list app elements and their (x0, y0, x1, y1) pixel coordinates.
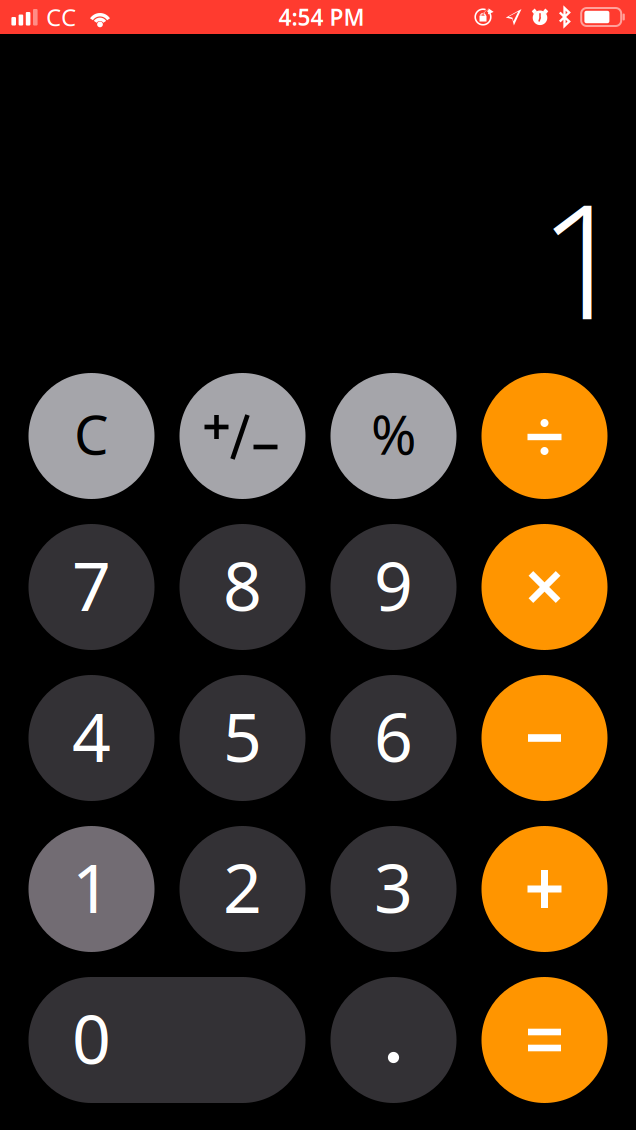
button[interactable]: 2 (179, 826, 305, 952)
button[interactable]: Plus (481, 826, 607, 952)
staticText: 0 (72, 992, 111, 1083)
staticText: 9 (374, 539, 413, 630)
staticText: 8 (223, 539, 262, 630)
button[interactable]: 1 (28, 826, 154, 952)
button[interactable]: % (330, 373, 456, 499)
staticText: CC (46, 1, 76, 33)
button[interactable]: 8 (179, 524, 305, 650)
button[interactable]: 5 (179, 675, 305, 801)
staticText: 1 (72, 841, 111, 932)
button[interactable]: Decimal point (330, 977, 456, 1103)
staticText: 7 (72, 539, 111, 630)
staticText: 2 (223, 841, 262, 932)
button[interactable]: Multiply (481, 524, 607, 650)
staticText: 5 (223, 690, 262, 781)
button[interactable]: Divide (481, 373, 607, 499)
button[interactable]: Equals (481, 977, 607, 1103)
staticText: 6 (374, 690, 413, 781)
button[interactable]: 9 (330, 524, 456, 650)
button[interactable]: C (28, 373, 154, 499)
button[interactable]: 0 (28, 977, 305, 1103)
staticText: % (371, 397, 416, 470)
staticText: 4:54 PM (278, 2, 364, 32)
staticText: 4 (72, 690, 111, 781)
staticText: 3 (374, 841, 413, 932)
button[interactable]: Minus (481, 675, 607, 801)
staticText: C (74, 397, 109, 470)
button[interactable]: 4 (28, 675, 154, 801)
button[interactable]: Plus minus (179, 373, 305, 499)
button[interactable]: 3 (330, 826, 456, 952)
staticText: 1 (538, 152, 629, 363)
button[interactable]: 6 (330, 675, 456, 801)
button[interactable]: 7 (28, 524, 154, 650)
